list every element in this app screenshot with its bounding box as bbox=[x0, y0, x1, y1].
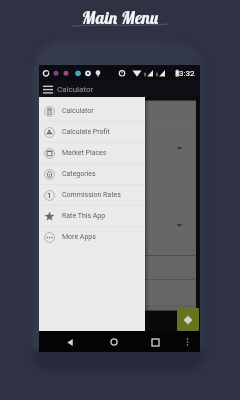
staticText: Market Places bbox=[62, 149, 107, 157]
button[interactable]: Rate This App bbox=[39, 206, 145, 226]
button[interactable]: Calculator bbox=[39, 101, 145, 121]
staticText: Commission Rates bbox=[62, 191, 121, 199]
button[interactable]: Back bbox=[61, 333, 79, 351]
button[interactable]: More options bbox=[180, 335, 194, 349]
button[interactable]: Home bbox=[105, 333, 123, 351]
button[interactable]: Market Places bbox=[39, 143, 145, 163]
staticText: Rate This App bbox=[62, 212, 106, 220]
button[interactable]: Categories bbox=[39, 164, 145, 184]
button[interactable]: Recent apps bbox=[146, 333, 164, 351]
button[interactable]: More Apps bbox=[39, 227, 145, 247]
staticText: More Apps bbox=[62, 233, 96, 241]
button[interactable]: Calculate bbox=[177, 308, 199, 331]
staticText: Calculator bbox=[62, 107, 94, 115]
button[interactable]: Commission Rates bbox=[39, 185, 145, 205]
staticText: 3:32 bbox=[179, 69, 195, 78]
staticText: Calculate Profit bbox=[62, 128, 110, 136]
staticText: Categories bbox=[62, 170, 96, 178]
button[interactable]: Open navigation drawer bbox=[40, 81, 56, 97]
staticText: Main Menu bbox=[82, 7, 159, 28]
button[interactable]: Calculate Profit bbox=[39, 122, 145, 142]
staticText: Calculator bbox=[57, 85, 94, 94]
